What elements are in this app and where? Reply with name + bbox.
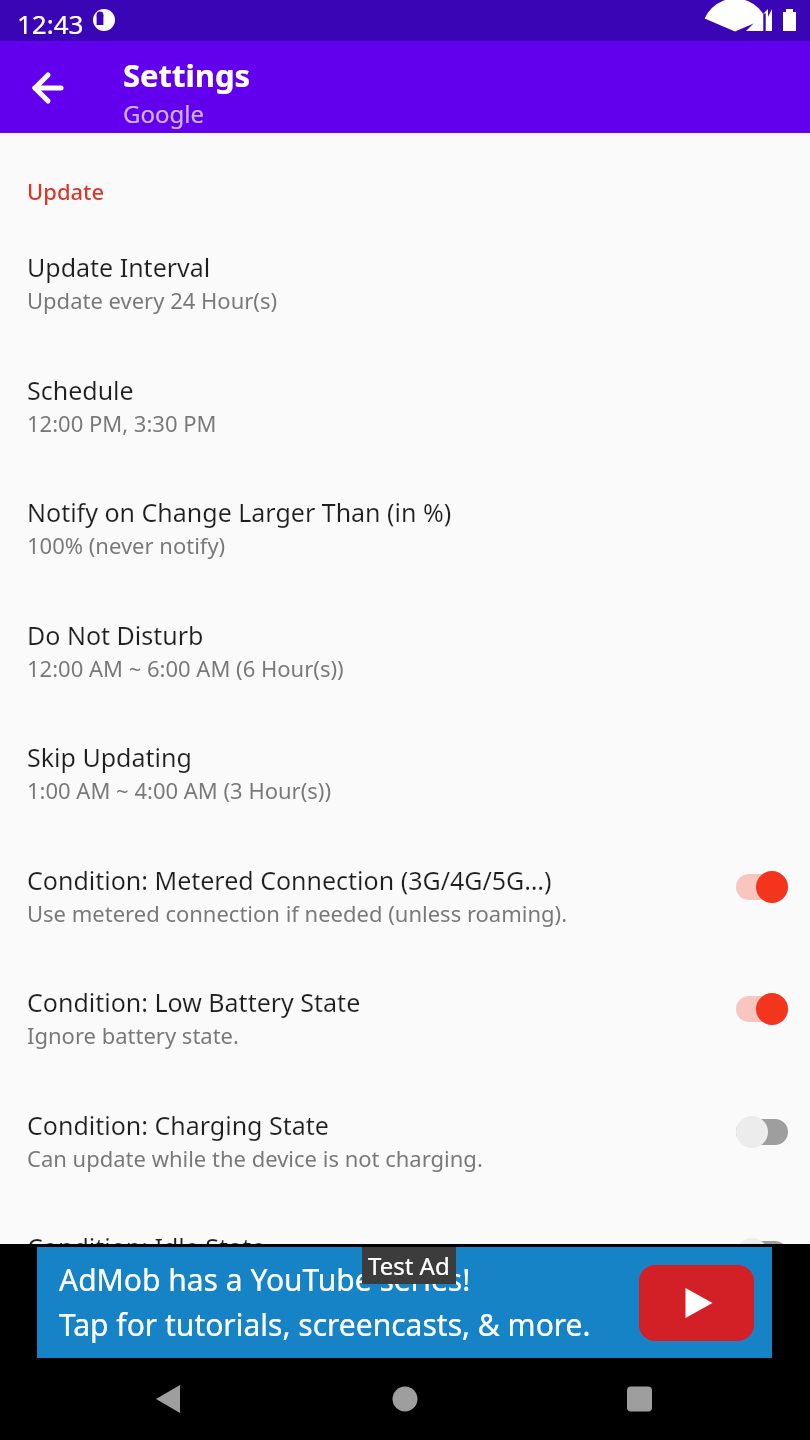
staticText: Ignore battery state. bbox=[27, 1020, 239, 1050]
button[interactable]: Schedule bbox=[0, 373, 810, 463]
button[interactable]: Condition: Idle State bbox=[0, 1230, 810, 1244]
staticText: Google bbox=[123, 97, 204, 130]
staticText: Do Not Disturb bbox=[27, 618, 204, 652]
staticText: Schedule bbox=[27, 373, 134, 407]
staticText: Update every 24 Hour(s) bbox=[27, 285, 278, 315]
staticText: 12:00 AM ~ 6:00 AM (6 Hour(s)) bbox=[27, 653, 344, 683]
staticText: Skip Updating bbox=[27, 740, 192, 774]
staticText: 12:00 PM, 3:30 PM bbox=[27, 408, 217, 438]
staticText: Tap for tutorials, screencasts, & more. bbox=[59, 1304, 591, 1345]
staticText: Can update while the device is not charg… bbox=[27, 1143, 483, 1173]
button[interactable]: Notify on Change Larger Than (in %) bbox=[0, 495, 810, 585]
staticText: Condition: Charging State bbox=[27, 1108, 329, 1142]
staticText: Test Ad bbox=[368, 1249, 450, 1282]
staticText: AdMob has a YouTube series! bbox=[59, 1259, 471, 1300]
staticText: Condition: Low Battery State bbox=[27, 985, 361, 1019]
button[interactable]: Condition: Metered Connection (3G/4G/5G…… bbox=[0, 863, 810, 953]
staticText: Settings bbox=[123, 54, 251, 96]
button[interactable]: Back bbox=[0, 1358, 270, 1440]
button[interactable]: Update Interval bbox=[0, 250, 810, 340]
staticText: Notify on Change Larger Than (in %) bbox=[27, 495, 452, 529]
staticText: Update bbox=[27, 176, 105, 206]
button[interactable]: Back bbox=[20, 60, 76, 116]
staticText: Use metered connection if needed (unless… bbox=[27, 898, 568, 928]
staticText: Update Interval bbox=[27, 250, 211, 284]
button[interactable]: Recent apps bbox=[540, 1358, 810, 1440]
staticText: 1:00 AM ~ 4:00 AM (3 Hour(s)) bbox=[27, 775, 332, 805]
staticText: 100% (never notify) bbox=[27, 530, 226, 560]
button[interactable]: Skip Updating bbox=[0, 740, 810, 830]
staticText: Condition: Metered Connection (3G/4G/5G…… bbox=[27, 863, 552, 897]
button[interactable]: AdMob has a YouTube series! bbox=[37, 1247, 772, 1358]
button[interactable]: Do Not Disturb bbox=[0, 618, 810, 708]
button[interactable]: Condition: Low Battery State bbox=[0, 985, 810, 1075]
button[interactable]: Condition: Charging State bbox=[0, 1108, 810, 1198]
staticText: 12:43 bbox=[17, 6, 84, 41]
button[interactable]: Home bbox=[270, 1358, 540, 1440]
staticText: Condition: Idle State bbox=[27, 1230, 266, 1244]
